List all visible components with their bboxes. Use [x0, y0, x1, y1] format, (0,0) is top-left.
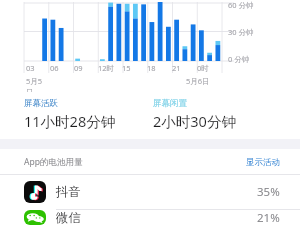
button[interactable]: 抖音 [0, 175, 300, 209]
staticText: 03 [26, 63, 35, 73]
staticText: 屏幕活跃 [24, 98, 58, 109]
staticText: 屏幕闲置 [153, 98, 187, 109]
staticText: 11小时28分钟 [24, 111, 116, 131]
button[interactable]: 显示活动 [246, 157, 280, 168]
button[interactable]: 屏幕闲置 [153, 98, 282, 131]
staticText: 06 [50, 63, 59, 73]
staticText: 09 [74, 63, 83, 73]
staticText: 35% [257, 184, 280, 200]
staticText: 0 分钟 [228, 54, 250, 64]
staticText: 0时 [197, 63, 209, 73]
staticText: 抖音 [56, 184, 81, 200]
staticText: App的电池用量 [24, 156, 83, 168]
staticText: 15 [122, 63, 131, 73]
staticText: 5月6日 [186, 76, 210, 86]
staticText: 21% [257, 210, 280, 225]
button[interactable]: 微信 [0, 210, 300, 225]
staticText: 微信 [56, 210, 81, 225]
staticText: 12时 [98, 63, 115, 73]
button[interactable]: 屏幕活跃 [24, 98, 153, 131]
staticText: 21 [172, 63, 181, 73]
staticText: 30 分钟 [228, 27, 254, 37]
staticText: 显示活动 [246, 157, 280, 168]
staticText: 18 [147, 63, 156, 73]
staticText: 2小时30分钟 [153, 111, 236, 131]
staticText: 5月5日 [26, 76, 49, 97]
staticText: 60 分钟 [228, 0, 254, 10]
